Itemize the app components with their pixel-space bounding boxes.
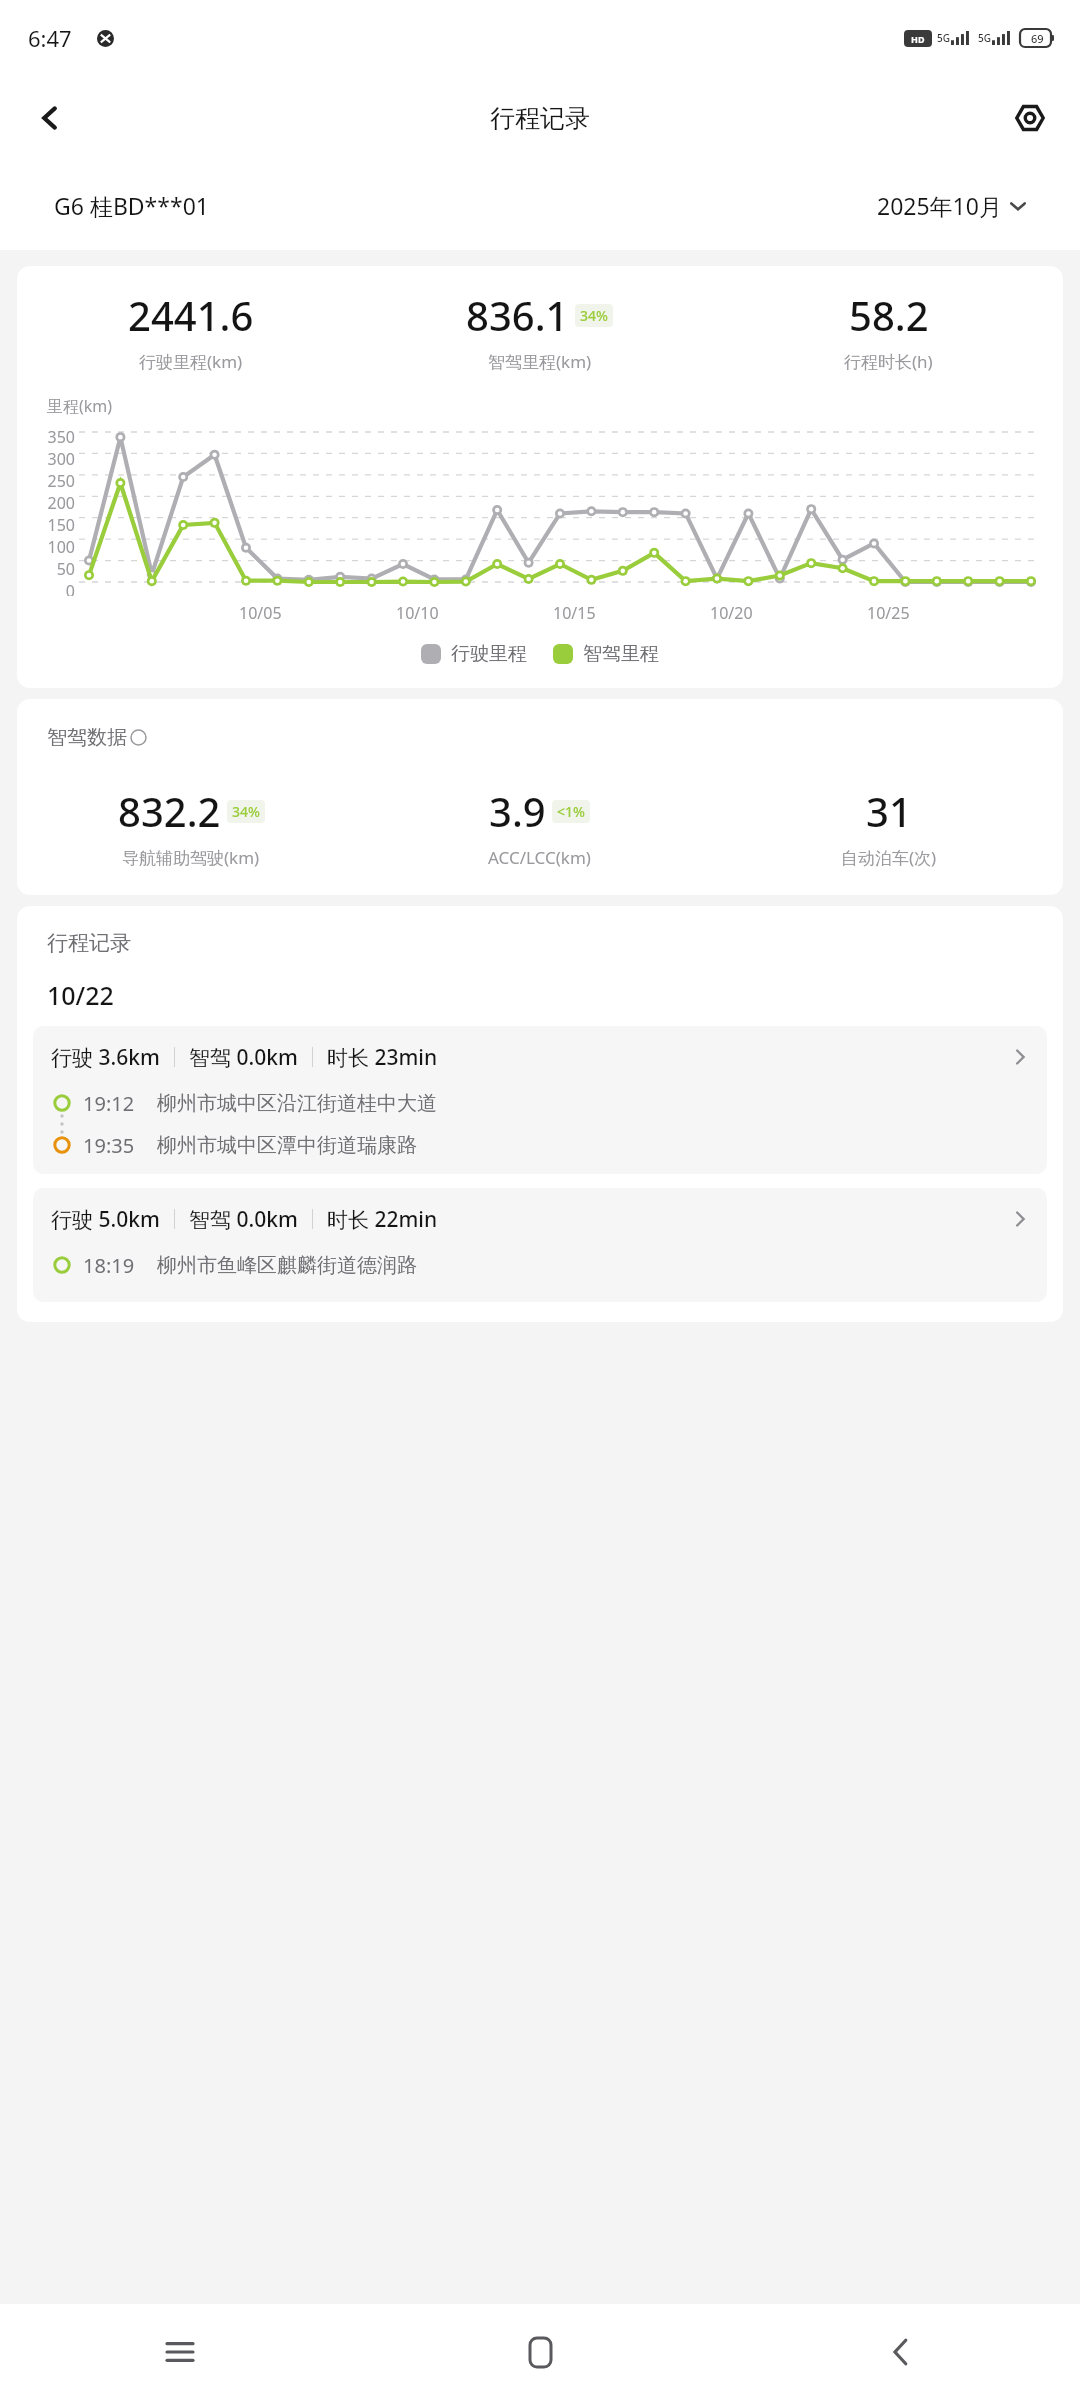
- staticText: G6 桂BD***01: [54, 190, 209, 221]
- staticText: 19:12: [83, 1090, 135, 1117]
- button[interactable]: 智驾数据: [47, 725, 147, 750]
- staticText: 行驶里程: [451, 642, 527, 666]
- staticText: 10/15: [553, 602, 596, 624]
- staticText: 10/20: [710, 602, 753, 624]
- staticText: 31: [866, 784, 912, 838]
- staticText: 3.9: [489, 784, 546, 838]
- staticText: 832.2: [118, 784, 221, 838]
- staticText: 导航辅助驾驶(km): [122, 846, 260, 869]
- staticText: 自动泊车(次): [841, 846, 937, 869]
- staticText: 行驶 5.0km: [51, 1205, 160, 1234]
- staticText: 10/05: [239, 602, 282, 624]
- staticText: 行程时长(h): [844, 350, 933, 373]
- staticText: 150: [47, 514, 75, 536]
- staticText: 350: [47, 426, 75, 448]
- staticText: 智驾 0.0km: [189, 1043, 298, 1072]
- staticText: 10/10: [396, 602, 439, 624]
- staticText: 34%: [232, 802, 260, 821]
- staticText: ACC/LCC(km): [488, 846, 591, 869]
- staticText: 智驾 0.0km: [189, 1205, 298, 1234]
- staticText: 10/25: [867, 602, 910, 624]
- staticText: 19:35: [83, 1132, 135, 1159]
- staticText: 柳州市城中区沿江街道桂中大道: [157, 1091, 437, 1116]
- staticText: 2025年10月: [877, 190, 1002, 221]
- staticText: 行驶里程(km): [139, 350, 243, 373]
- staticText: 时长 22min: [327, 1205, 438, 1234]
- staticText: 5G: [937, 31, 950, 45]
- staticText: 50: [56, 558, 75, 580]
- button[interactable]: 2025年10月: [877, 190, 1026, 221]
- button[interactable]: Home: [360, 2304, 720, 2400]
- staticText: 智驾里程: [583, 642, 659, 666]
- staticText: <1%: [557, 802, 585, 821]
- staticText: 柳州市鱼峰区麒麟街道德润路: [157, 1253, 417, 1278]
- staticText: 200: [47, 492, 75, 514]
- staticText: 0: [65, 580, 75, 596]
- button[interactable]: 行驶 5.0km: [33, 1188, 1047, 1302]
- staticText: 6:47: [28, 23, 72, 53]
- button[interactable]: Recent apps: [0, 2304, 360, 2400]
- staticText: 58.2: [849, 288, 929, 342]
- staticText: HD: [911, 33, 925, 45]
- staticText: 行驶 3.6km: [51, 1043, 160, 1072]
- button[interactable]: Settings: [1002, 90, 1058, 146]
- staticText: 300: [47, 448, 75, 470]
- button[interactable]: Back: [22, 90, 78, 146]
- staticText: 行程记录: [47, 930, 131, 956]
- staticText: 250: [47, 470, 75, 492]
- staticText: 柳州市城中区潭中街道瑞康路: [157, 1133, 417, 1158]
- staticText: 2441.6: [128, 288, 254, 342]
- staticText: 18:19: [83, 1252, 135, 1279]
- staticText: 时长 23min: [327, 1043, 438, 1072]
- staticText: 69: [1031, 31, 1044, 46]
- staticText: 智驾数据: [47, 725, 127, 750]
- staticText: 100: [47, 536, 75, 558]
- staticText: 34%: [580, 306, 608, 325]
- staticText: 10/22: [47, 978, 114, 1012]
- button[interactable]: 行驶 3.6km: [33, 1026, 1047, 1174]
- button[interactable]: Back: [720, 2304, 1080, 2400]
- staticText: 里程(km): [47, 395, 113, 417]
- staticText: 5G: [978, 31, 991, 45]
- staticText: 行程记录: [490, 103, 590, 134]
- staticText: 836.1: [466, 288, 569, 342]
- staticText: 智驾里程(km): [488, 350, 592, 373]
